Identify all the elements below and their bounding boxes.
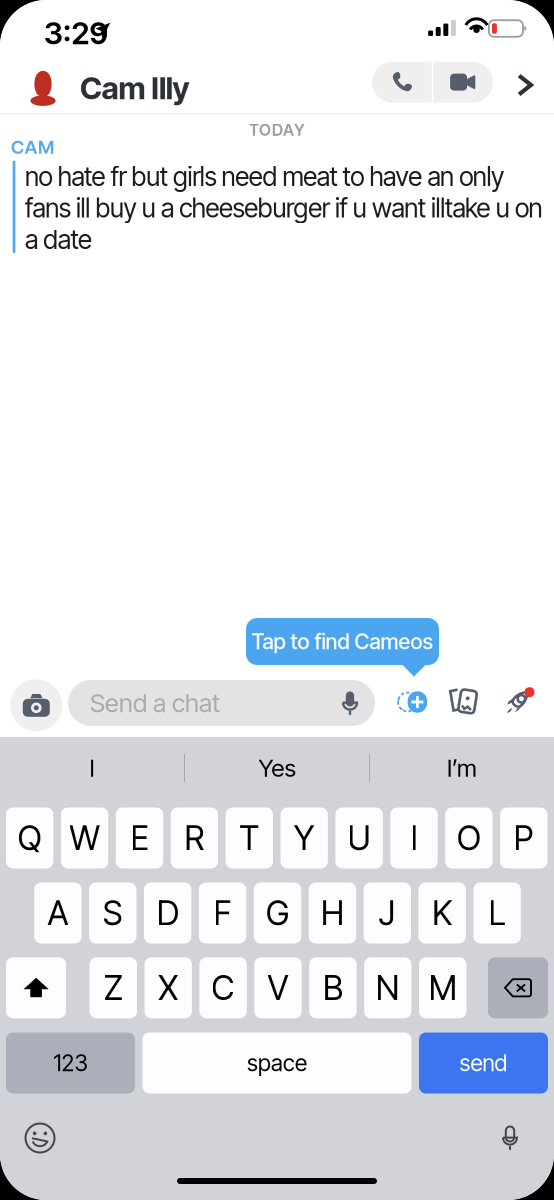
button[interactable]: M [419, 957, 466, 1018]
button[interactable]: I’m [370, 742, 554, 794]
button[interactable]: I [390, 807, 438, 868]
button[interactable]: I [0, 742, 184, 794]
button[interactable]: Z [90, 957, 137, 1018]
button[interactable]: G [254, 882, 301, 943]
button[interactable]: J [364, 882, 411, 943]
staticText: X [158, 968, 178, 1008]
button[interactable]: Yes [185, 742, 369, 794]
button[interactable]: N [364, 957, 411, 1018]
staticText: E [130, 818, 148, 858]
button[interactable]: Cameos [390, 681, 432, 723]
button[interactable]: O [445, 807, 493, 868]
button[interactable]: Tap to find Cameos [246, 618, 439, 665]
staticText: U [348, 818, 371, 858]
staticText: S [103, 893, 123, 933]
button[interactable]: U [335, 807, 383, 868]
button[interactable]: Shift [6, 957, 66, 1018]
button[interactable]: F [199, 882, 246, 943]
staticText: Yes [258, 753, 295, 782]
button[interactable]: B [309, 957, 357, 1018]
button[interactable]: E [116, 807, 163, 868]
staticText: Y [294, 818, 315, 858]
button[interactable]: S [89, 882, 136, 943]
staticText: Q [18, 818, 42, 858]
staticText: H [321, 893, 344, 933]
staticText: R [184, 818, 204, 858]
staticText: N [376, 968, 400, 1008]
button[interactable]: 123 [6, 1032, 135, 1093]
button[interactable]: Video call [433, 62, 493, 103]
button[interactable]: D [144, 882, 191, 943]
button[interactable]: Stickers [440, 680, 482, 722]
staticText: L [489, 893, 506, 933]
staticText: no hate fr but girls need meat to have a… [25, 161, 543, 255]
staticText: C [212, 968, 235, 1008]
staticText: Tap to find Cameos [251, 629, 433, 654]
button[interactable]: W [61, 807, 108, 868]
button[interactable]: send [419, 1032, 548, 1093]
button[interactable]: More options [512, 68, 538, 102]
staticText: J [379, 893, 396, 933]
staticText: F [214, 893, 232, 933]
staticText: M [429, 968, 457, 1008]
staticText: CAM [11, 136, 54, 158]
staticText: Cam Illy [80, 69, 190, 106]
button[interactable]: C [199, 957, 247, 1018]
staticText: send [459, 1049, 507, 1077]
button[interactable]: K [418, 882, 466, 943]
staticText: I’m [447, 753, 477, 782]
staticText: W [70, 818, 100, 858]
staticText: I [89, 753, 94, 782]
button[interactable]: Record voice note [331, 680, 369, 726]
staticText: A [47, 893, 68, 933]
button[interactable]: space [142, 1032, 411, 1093]
staticText: 123 [53, 1049, 87, 1077]
button[interactable]: Cam Illy [30, 64, 200, 112]
button[interactable]: Q [6, 807, 53, 868]
staticText: I [410, 818, 417, 858]
button[interactable]: Open camera [10, 679, 62, 731]
button[interactable]: P [500, 807, 547, 868]
button[interactable]: Emoji keyboard [12, 1110, 68, 1166]
staticText: space [247, 1049, 307, 1077]
staticText: B [323, 968, 343, 1008]
button[interactable]: Voice call [372, 62, 432, 103]
staticText: T [239, 818, 259, 858]
button[interactable]: V [254, 957, 302, 1018]
staticText: O [457, 818, 481, 858]
staticText: Z [104, 968, 123, 1008]
staticText: P [514, 818, 534, 858]
staticText: 3:29 [44, 14, 108, 51]
button[interactable]: Dictation [482, 1110, 538, 1166]
staticText: K [432, 893, 452, 933]
staticText: TODAY [249, 120, 305, 140]
button[interactable]: Y [280, 807, 328, 868]
button[interactable]: Games [498, 681, 540, 723]
button[interactable]: A [34, 882, 82, 943]
button[interactable]: R [171, 807, 218, 868]
staticText: V [267, 968, 288, 1008]
button[interactable]: H [309, 882, 356, 943]
button[interactable]: L [473, 882, 521, 943]
button[interactable]: Delete [488, 957, 548, 1018]
button[interactable]: T [226, 807, 273, 868]
staticText: Send a chat [90, 688, 220, 718]
staticText: D [157, 893, 179, 933]
staticText: G [266, 893, 289, 933]
button[interactable]: X [144, 957, 192, 1018]
